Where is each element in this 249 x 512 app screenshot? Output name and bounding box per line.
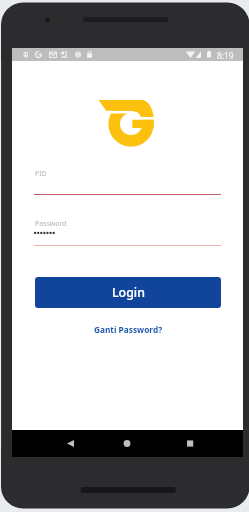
button[interactable]: Login	[35, 277, 221, 308]
staticText: Ganti Password?	[94, 324, 163, 335]
staticText: Login	[112, 284, 145, 301]
staticText: 8:19	[217, 50, 234, 61]
staticText: PID	[35, 169, 47, 179]
button[interactable]: Ganti Password?	[91, 323, 165, 336]
staticText: Password	[35, 219, 67, 229]
